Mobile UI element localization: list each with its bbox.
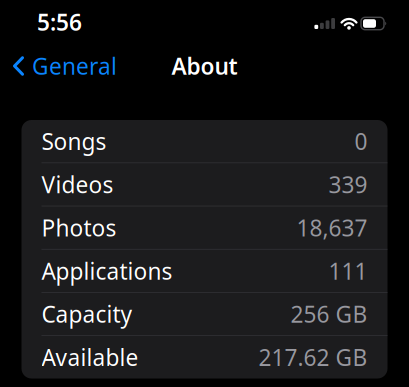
staticText: General	[32, 51, 117, 81]
staticText: About	[171, 51, 237, 81]
staticText: Videos	[41, 169, 113, 199]
staticText: Capacity	[41, 299, 132, 329]
staticText: 0	[354, 126, 367, 156]
staticText: 339	[328, 169, 367, 199]
staticText: 18,637	[296, 213, 367, 243]
button[interactable]: Back	[0, 51, 117, 81]
staticText: 217.62 GB	[258, 342, 367, 372]
staticText: 256 GB	[290, 299, 367, 329]
staticText: 111	[328, 256, 367, 286]
staticText: Available	[41, 342, 138, 372]
staticText: 5:56	[37, 7, 82, 37]
staticText: Applications	[41, 256, 172, 286]
staticText: Songs	[41, 126, 106, 156]
staticText: Photos	[41, 213, 116, 243]
